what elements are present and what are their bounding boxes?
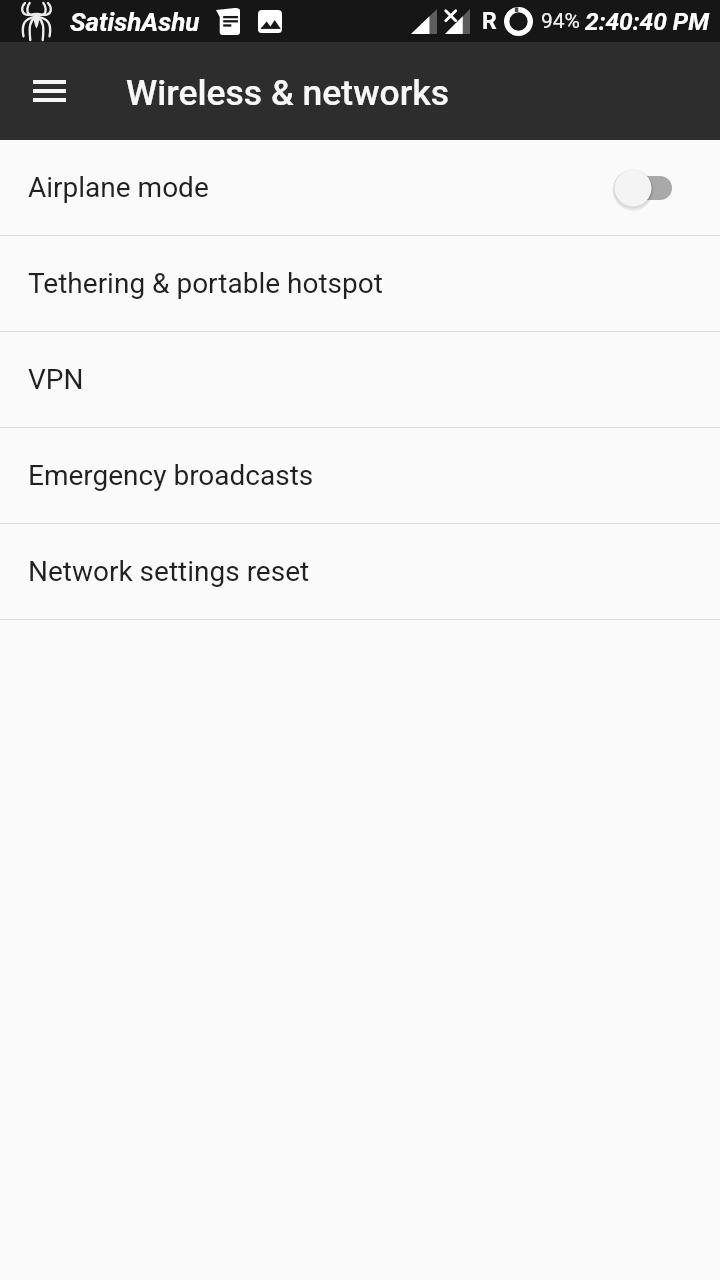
staticText: VPN [28, 363, 84, 396]
button[interactable]: Network settings reset [0, 524, 720, 619]
staticText: Tethering & portable hotspot [28, 267, 383, 300]
staticText: 2:40:40 PM [585, 7, 709, 36]
button[interactable]: Airplane mode [0, 140, 720, 235]
staticText: R [482, 8, 497, 35]
button[interactable]: VPN [0, 332, 720, 427]
button[interactable]: Open navigation menu [16, 58, 82, 124]
button[interactable]: Tethering & portable hotspot [0, 236, 720, 331]
button[interactable]: Emergency broadcasts [0, 428, 720, 523]
staticText: 94% [541, 9, 580, 34]
staticText: Airplane mode [28, 171, 209, 204]
staticText: Wireless & networks [126, 72, 449, 114]
staticText: Emergency broadcasts [28, 459, 314, 492]
staticText: SatishAshu [70, 7, 200, 37]
button[interactable]: Airplane mode toggle [615, 160, 672, 216]
staticText: Network settings reset [28, 555, 310, 588]
